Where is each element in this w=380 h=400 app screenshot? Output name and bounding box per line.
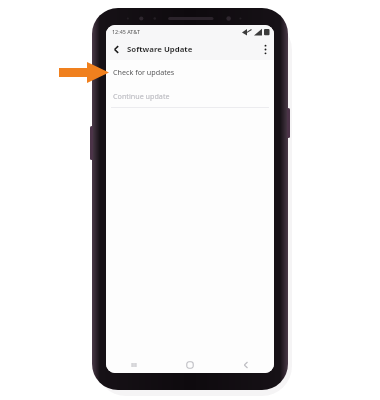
button[interactable]: Check for updates: [106, 60, 274, 84]
staticText: 12:45 AT&T: [112, 28, 140, 35]
staticText: Continue update: [113, 91, 170, 101]
button[interactable]: Recents: [106, 356, 162, 373]
button[interactable]: Back: [106, 38, 126, 60]
button[interactable]: Home: [162, 356, 218, 373]
button[interactable]: More options: [256, 38, 274, 60]
staticText: Software Update: [127, 44, 193, 55]
button[interactable]: Continue update: [106, 84, 274, 107]
button[interactable]: Back: [218, 356, 274, 373]
staticText: Check for updates: [113, 67, 175, 77]
